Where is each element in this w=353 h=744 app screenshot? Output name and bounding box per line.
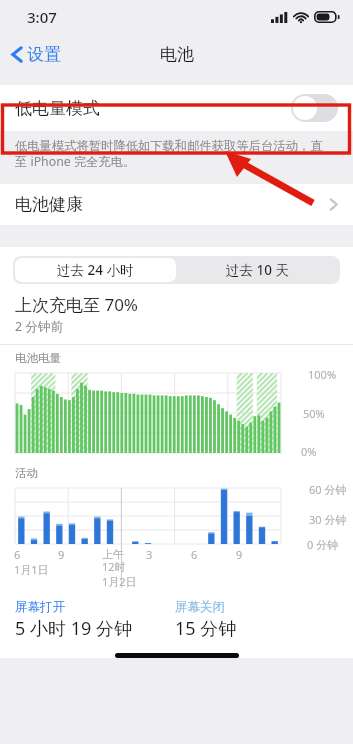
staticText: 1月1日 — [14, 562, 49, 577]
staticText: 设置 — [27, 44, 61, 65]
staticText: 6 — [14, 547, 21, 562]
staticText: 上次充电至 70% — [15, 293, 138, 316]
button[interactable]: 电池健康 — [0, 184, 353, 225]
staticText: 6 — [191, 547, 198, 562]
staticText: 电池 — [160, 44, 194, 65]
staticText: 0 分钟 — [307, 537, 339, 552]
button[interactable]: 低电量模式开关 — [291, 94, 338, 122]
staticText: 1月2日 — [102, 574, 137, 589]
staticText: 9 — [58, 547, 65, 562]
staticText: 2 分钟前 — [15, 318, 63, 335]
staticText: 100% — [308, 367, 337, 382]
staticText: 3:07 — [27, 7, 57, 27]
staticText: 低电量模式将暂时降低如下载和邮件获取等后台活动，直 — [15, 138, 323, 153]
staticText: 过去 24 小时 — [57, 261, 134, 279]
staticText: 3 — [146, 547, 153, 562]
staticText: 电池健康 — [15, 194, 83, 215]
staticText: 活动 — [15, 466, 38, 480]
staticText: 0% — [301, 444, 317, 459]
staticText: 60 分钟 — [309, 482, 347, 497]
staticText: 过去 10 天 — [226, 261, 289, 279]
staticText: 15 分钟 — [175, 616, 237, 641]
staticText: 至 iPhone 完全充电。 — [15, 153, 136, 170]
staticText: 低电量模式 — [15, 98, 100, 119]
staticText: 屏幕打开 — [15, 599, 65, 615]
staticText: 50% — [303, 406, 325, 421]
staticText: 30 分钟 — [309, 512, 347, 527]
staticText: 上午 12时 — [102, 547, 126, 574]
button[interactable]: 低电量模式 — [0, 85, 353, 131]
staticText: 9 — [236, 547, 243, 562]
staticText: 电池电量 — [15, 351, 61, 365]
button[interactable]: 过去 10 天 — [176, 258, 338, 282]
button[interactable]: 设置 — [0, 39, 71, 70]
staticText: 5 小时 19 分钟 — [15, 616, 132, 641]
button[interactable]: 过去 24 小时 — [15, 258, 176, 282]
staticText: 屏幕关闭 — [175, 599, 225, 615]
